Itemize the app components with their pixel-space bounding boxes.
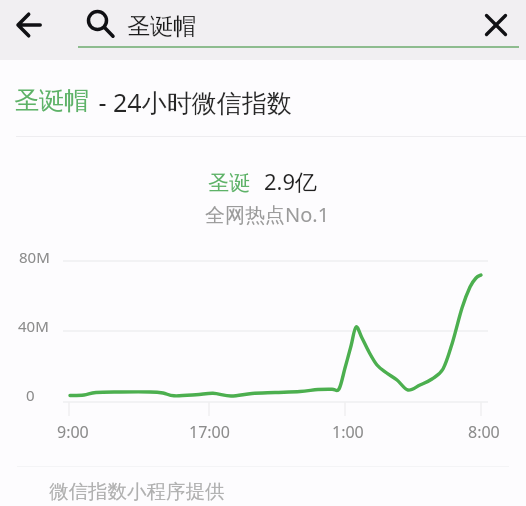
button[interactable]: Back — [11, 7, 47, 43]
staticText: 17:00 — [189, 421, 230, 443]
staticText: 8:00 — [468, 421, 500, 443]
staticText: 圣诞帽 — [127, 12, 196, 41]
staticText: 圣诞 — [208, 170, 250, 196]
button[interactable]: Clear search — [479, 8, 513, 42]
staticText: 9:00 — [57, 421, 89, 443]
staticText: - 24小时微信指数 — [92, 85, 292, 119]
staticText: 40M — [18, 316, 49, 336]
staticText: 1:00 — [332, 421, 364, 443]
staticText: 80M — [19, 247, 50, 267]
staticText: 0 — [26, 385, 35, 405]
staticText: 全网热点No.1 — [205, 201, 330, 228]
button[interactable]: 圣诞帽 — [78, 0, 472, 47]
staticText: 圣诞帽 — [14, 85, 89, 116]
staticText: 微信指数小程序提供 — [49, 479, 225, 504]
button[interactable] — [0, 60, 526, 506]
staticText: 2.9亿 — [264, 166, 318, 196]
